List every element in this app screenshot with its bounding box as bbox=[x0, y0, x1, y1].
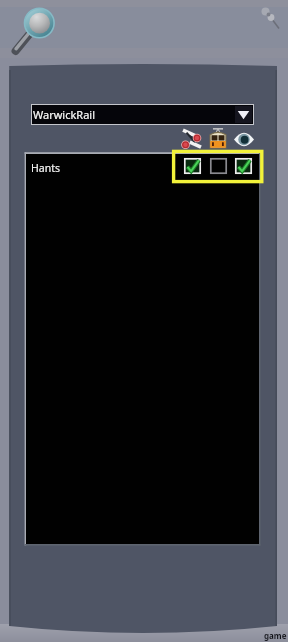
button[interactable]: Hants bbox=[26, 154, 259, 182]
button[interactable]: Trains bbox=[209, 126, 227, 148]
button[interactable]: Option disabled bbox=[210, 158, 227, 174]
button[interactable]: Option enabled bbox=[184, 158, 201, 174]
staticText: Hants bbox=[31, 161, 60, 175]
button[interactable]: Settings bbox=[258, 4, 282, 28]
button[interactable]: Signals bbox=[177, 125, 205, 149]
staticText: WarwickRail bbox=[33, 107, 96, 122]
button[interactable]: Option enabled bbox=[235, 158, 252, 174]
button[interactable]: Search bbox=[8, 0, 64, 56]
button[interactable]: WarwickRail bbox=[32, 105, 253, 124]
button[interactable]: View bbox=[234, 133, 254, 146]
staticText: game bbox=[264, 630, 287, 641]
